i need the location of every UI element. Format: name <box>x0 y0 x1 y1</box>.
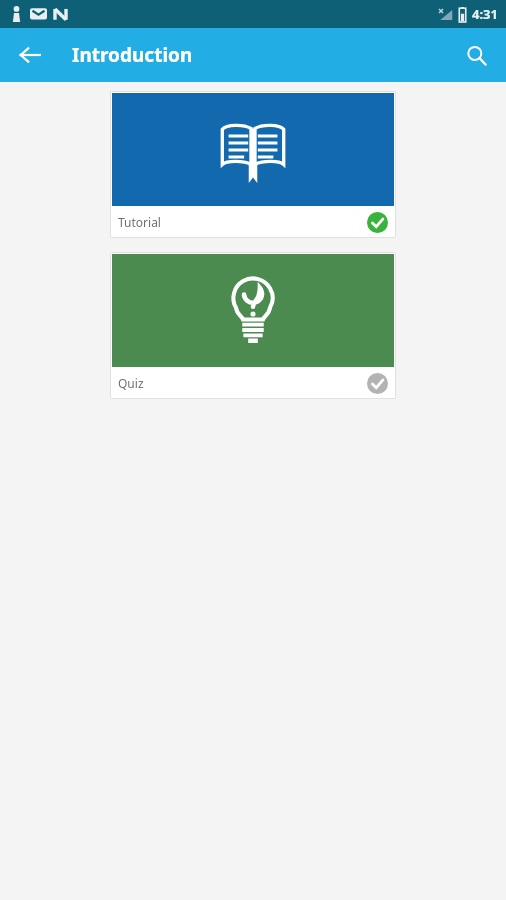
staticText: Tutorial <box>118 214 367 230</box>
button[interactable]: Tutorial <box>110 91 396 238</box>
button[interactable]: Quiz <box>110 252 396 399</box>
button[interactable]: Search <box>452 31 500 79</box>
staticText: Introduction <box>72 42 193 68</box>
staticText: 4:31 <box>472 5 498 23</box>
staticText: Quiz <box>118 375 367 391</box>
button[interactable]: Navigate up <box>6 31 54 79</box>
